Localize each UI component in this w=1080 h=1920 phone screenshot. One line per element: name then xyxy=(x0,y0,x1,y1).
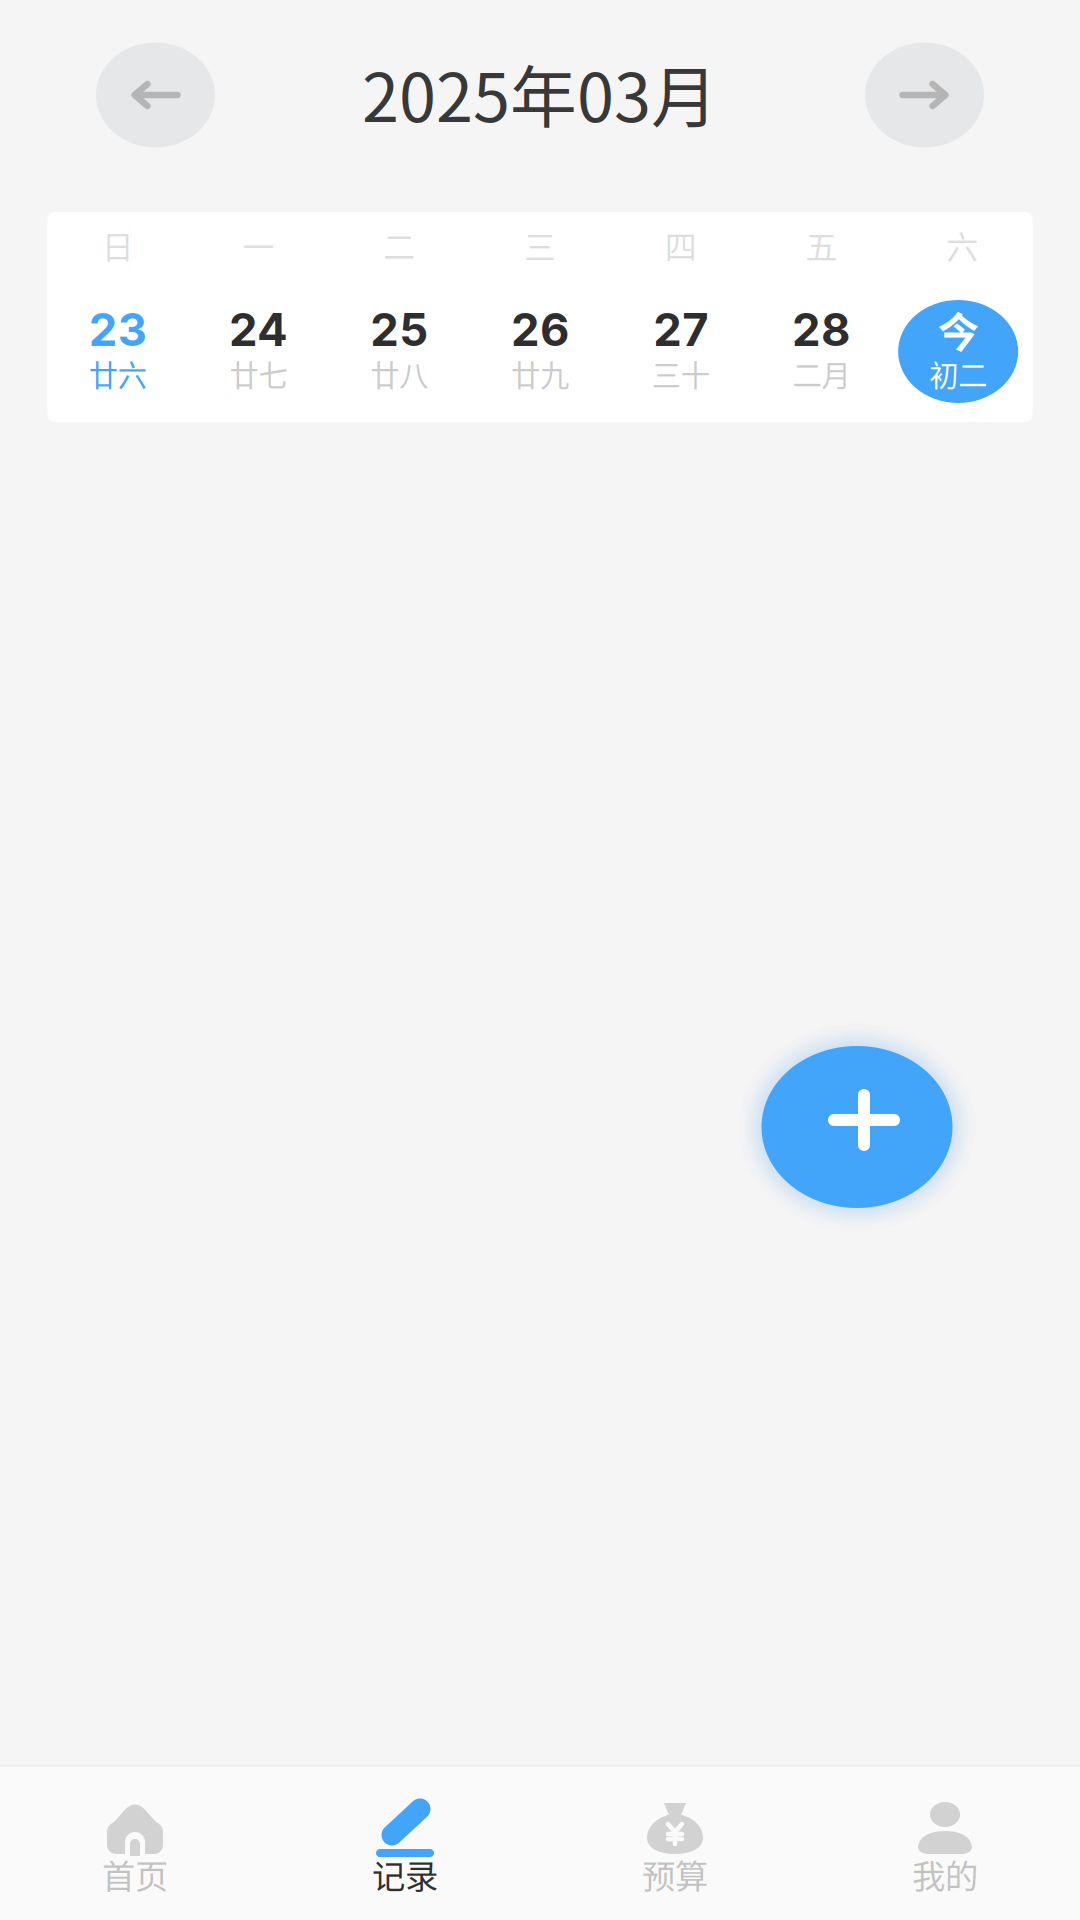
button[interactable]: 下个月 xyxy=(865,42,984,147)
button[interactable]: 上个月 xyxy=(96,42,215,147)
staticText: 二月 xyxy=(792,352,850,395)
staticText: 预算 xyxy=(642,1850,708,1898)
staticText: 廿七 xyxy=(230,352,288,395)
staticText: 24 xyxy=(229,302,288,357)
staticText: 23 xyxy=(89,302,147,357)
staticText: 三 xyxy=(524,222,556,268)
staticText: 25 xyxy=(370,302,428,357)
staticText: 二 xyxy=(383,222,415,268)
button[interactable]: 记录 xyxy=(270,1767,540,1920)
staticText: 廿九 xyxy=(511,352,569,395)
staticText: 一 xyxy=(243,222,275,268)
staticText: 五 xyxy=(805,222,837,268)
staticText: 四 xyxy=(665,222,697,268)
staticText: 日 xyxy=(102,222,134,268)
staticText: 26 xyxy=(511,302,569,357)
staticText: 廿六 xyxy=(89,352,147,395)
staticText: 我的 xyxy=(912,1850,978,1898)
staticText: 首页 xyxy=(102,1850,168,1898)
staticText: 记录 xyxy=(372,1850,438,1898)
staticText: 六 xyxy=(946,222,978,268)
staticText: 初二 xyxy=(929,352,987,395)
staticText: 27 xyxy=(653,302,708,357)
button[interactable]: 记一笔 xyxy=(727,1012,987,1242)
staticText: 28 xyxy=(792,302,851,357)
button[interactable]: 预算 xyxy=(540,1767,810,1920)
staticText: 2025年03月 xyxy=(362,45,718,141)
button[interactable]: 首页 xyxy=(0,1767,270,1920)
button[interactable]: 我的 xyxy=(810,1767,1080,1920)
staticText: 今 xyxy=(938,300,979,359)
staticText: 廿八 xyxy=(370,352,428,395)
staticText: 三十 xyxy=(652,352,710,395)
